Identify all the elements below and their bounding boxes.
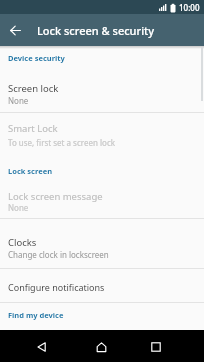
button[interactable]: [0, 278, 204, 298]
button[interactable]: [36, 341, 48, 353]
button[interactable]: [0, 234, 204, 264]
button[interactable]: [9, 24, 21, 36]
staticText: Lock screen message: [8, 190, 103, 203]
staticText: Find my device: [8, 310, 64, 320]
staticText: Configure notifications: [8, 281, 105, 293]
staticText: Screen lock: [8, 82, 59, 95]
staticText: Clocks: [8, 236, 37, 249]
staticText: Smart Lock: [8, 122, 58, 135]
staticText: None: [8, 95, 29, 106]
staticText: Lock screen & security: [37, 23, 155, 38]
staticText: Lock screen: [8, 166, 53, 176]
staticText: None: [8, 202, 29, 213]
button[interactable]: [0, 80, 204, 110]
staticText: 10:00: [179, 2, 200, 13]
staticText: Change clock in lockscreen: [8, 249, 109, 260]
button[interactable]: [150, 341, 162, 353]
staticText: To use, first set a screen lock: [8, 137, 115, 148]
staticText: Device security: [8, 53, 65, 63]
button[interactable]: [95, 341, 107, 353]
